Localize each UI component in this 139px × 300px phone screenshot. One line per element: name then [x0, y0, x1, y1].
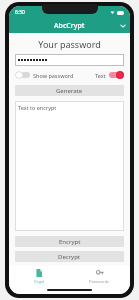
staticText: Show password	[33, 72, 74, 79]
staticText: Generate	[56, 87, 83, 95]
button[interactable]: More options	[116, 19, 130, 33]
staticText: Text	[95, 72, 106, 79]
button[interactable]: Decrypt	[15, 251, 124, 262]
staticText: 6:50	[15, 9, 25, 16]
button[interactable]	[15, 54, 124, 66]
button[interactable]: Passwords	[69, 266, 130, 286]
button[interactable]: Generate	[15, 85, 124, 96]
staticText: AbcCrypt	[54, 21, 85, 31]
staticText: Passwords	[89, 279, 110, 284]
staticText: Encrypt	[59, 238, 81, 246]
button[interactable]: Text to encrypt	[15, 101, 124, 231]
button[interactable]: Text	[95, 71, 124, 79]
button[interactable]: Crypt	[9, 266, 69, 286]
staticText: Your password	[15, 38, 124, 50]
staticText: Crypt	[34, 279, 45, 284]
button[interactable]: Encrypt	[15, 236, 124, 247]
staticText: Decrypt	[58, 253, 81, 261]
staticText: Text to encrypt	[18, 104, 57, 111]
button[interactable]: Show password	[15, 71, 74, 79]
